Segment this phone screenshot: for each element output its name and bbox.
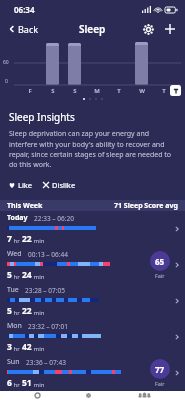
staticText: Sleep deprivation can zap your energy an… [9,129,176,169]
staticText: 23:32 – 07:01 [28,322,68,331]
button[interactable]: Discover [19,391,56,400]
staticText: This Week [7,201,43,211]
staticText: S [73,87,77,95]
staticText: W [139,87,145,95]
staticText: 77 [155,364,165,375]
staticText: 22:33 – 06:20 [34,214,74,223]
button[interactable]: Tue [0,283,185,319]
staticText: 42 [22,341,32,353]
staticText: Sleep [79,22,106,36]
staticText: Back [18,23,39,35]
button[interactable]: Community [122,391,167,400]
staticText: Tue [7,285,19,295]
staticText: 24 [22,269,32,281]
staticText: hr [12,237,22,245]
staticText: M [94,87,100,95]
staticText: hr [12,381,22,389]
staticText: 06:34 [14,4,35,15]
button[interactable]: Wed [0,247,185,283]
button[interactable]: Today [74,391,103,400]
staticText: min [32,345,45,353]
staticText: T [162,87,166,95]
staticText: min [32,273,45,281]
staticText: 71 Sleep Score avg [114,201,178,211]
staticText: Fair [155,272,165,279]
staticText: 0 [5,78,8,85]
staticText: 22 [22,233,32,245]
staticText: 00:13 – 06:44 [28,250,68,259]
staticText: Sleep Insights [9,110,75,124]
staticText: min [32,309,45,317]
staticText: 65 [155,256,165,267]
button[interactable]: Mon [0,319,185,355]
staticText: Mon [7,321,22,331]
staticText: 22 [22,305,32,317]
staticText: F [28,87,32,95]
button[interactable]: Today [170,85,181,96]
staticText: hr [12,273,22,281]
staticText: 7 [7,233,12,245]
staticText: min [32,237,45,245]
staticText: min [32,381,45,389]
button[interactable]: Settings [141,22,155,36]
staticText: T [117,87,121,95]
staticText: 60 [3,59,9,66]
staticText: 5 [7,305,12,317]
staticText: 23:28 – 07:05 [25,286,65,295]
staticText: 5 [7,269,12,281]
staticText: Wed [7,249,22,259]
staticText: hr [12,309,22,317]
staticText: 6 [7,377,12,389]
staticText: Fair [155,380,165,387]
staticText: Like [18,180,33,190]
button[interactable]: Today [0,211,185,247]
staticText: S [51,87,55,95]
staticText: Dislike [52,180,76,190]
staticText: 23:36 – 07:43 [26,358,66,367]
button[interactable]: Like [9,178,37,192]
staticText: Today [7,213,28,223]
staticText: 3 [7,341,12,353]
button[interactable]: Sun [0,355,185,391]
button[interactable]: Add [163,22,177,36]
staticText: Sun [7,357,20,367]
button[interactable]: Dislike [43,178,80,192]
button[interactable]: Back [6,21,41,37]
staticText: 51 [22,377,32,389]
staticText: hr [12,345,22,353]
